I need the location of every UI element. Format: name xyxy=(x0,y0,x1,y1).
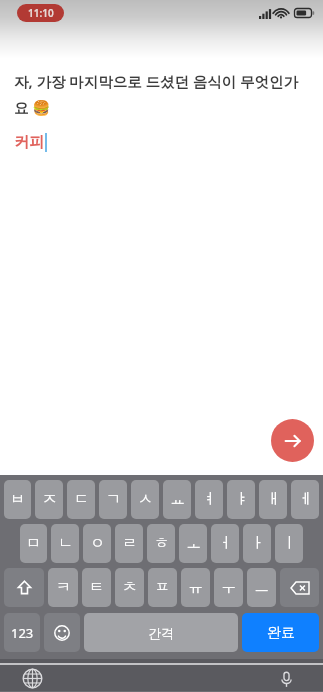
staticText: ㄴ xyxy=(58,534,73,553)
staticText: ㅇ xyxy=(90,534,105,553)
staticText: ㅌ xyxy=(89,578,104,597)
staticText: ㅡ xyxy=(254,578,269,597)
button[interactable]: ㅜ xyxy=(214,568,243,607)
button[interactable]: ㅊ xyxy=(115,568,144,607)
button[interactable]: ㅌ xyxy=(82,568,111,607)
staticText: ㅎ xyxy=(154,534,169,553)
button[interactable]: ㅋ xyxy=(48,568,78,607)
button[interactable]: ㅏ xyxy=(243,524,271,563)
button[interactable]: ㅣ xyxy=(275,524,303,563)
button[interactable]: ㅓ xyxy=(211,524,239,563)
staticText: ㅐ xyxy=(266,490,281,509)
button[interactable]: ㅛ xyxy=(163,480,191,519)
button[interactable]: ㅔ xyxy=(291,480,319,519)
staticText: ㅔ xyxy=(298,490,313,509)
button[interactable]: ㄴ xyxy=(51,524,79,563)
button[interactable]: ㅡ xyxy=(247,568,276,607)
staticText: 123 xyxy=(11,624,34,642)
button[interactable]: ㅇ xyxy=(83,524,111,563)
button[interactable]: ㄹ xyxy=(115,524,143,563)
staticText: ㅑ xyxy=(234,490,249,509)
staticText: 자, 가장 마지막으로 드셨던 음식이 무엇인가요 🍔 xyxy=(14,71,311,117)
staticText: ㄱ xyxy=(106,490,121,509)
staticText: ㅂ xyxy=(10,490,25,509)
button[interactable]: ㅑ xyxy=(227,480,255,519)
staticText: ㅜ xyxy=(221,578,236,597)
button[interactable]: ㅠ xyxy=(181,568,210,607)
button[interactable]: Shift xyxy=(4,568,44,607)
button[interactable]: ㅗ xyxy=(179,524,207,563)
staticText: ㅏ xyxy=(250,534,265,553)
staticText: 11:10 xyxy=(28,6,54,20)
staticText: ㅅ xyxy=(138,490,153,509)
button[interactable]: ㅐ xyxy=(259,480,287,519)
button[interactable]: ㄷ xyxy=(67,480,95,519)
button[interactable]: ㅂ xyxy=(4,480,31,519)
staticText: ㅁ xyxy=(26,534,41,553)
staticText: ㅠ xyxy=(188,578,203,597)
button[interactable]: ㅍ xyxy=(148,568,177,607)
staticText: ㅗ xyxy=(186,534,201,553)
button[interactable]: ㅕ xyxy=(195,480,223,519)
button[interactable]: 완료 xyxy=(242,613,319,652)
staticText: ㅣ xyxy=(282,534,297,553)
staticText: 커피 xyxy=(14,133,44,152)
button[interactable]: Voice input xyxy=(276,668,297,689)
button[interactable]: Backspace xyxy=(280,568,319,607)
button[interactable]: ㄱ xyxy=(99,480,127,519)
button[interactable]: ㅅ xyxy=(131,480,159,519)
button[interactable]: Emoji xyxy=(44,613,80,652)
staticText: ㅈ xyxy=(42,490,57,509)
button[interactable]: 간격 xyxy=(84,613,238,652)
staticText: ㅛ xyxy=(170,490,185,509)
staticText: ㅍ xyxy=(155,578,170,597)
staticText: 간격 xyxy=(148,625,174,641)
button[interactable]: Next question xyxy=(271,419,314,462)
staticText: ㅋ xyxy=(56,578,71,597)
staticText: ㅊ xyxy=(122,578,137,597)
button[interactable]: ㅈ xyxy=(35,480,63,519)
staticText: ㄷ xyxy=(74,490,89,509)
button[interactable]: Change keyboard language xyxy=(22,668,43,689)
staticText: ㄹ xyxy=(122,534,137,553)
button[interactable]: 123 xyxy=(4,613,40,652)
staticText: ㅕ xyxy=(202,490,217,509)
staticText: 완료 xyxy=(267,624,295,642)
button[interactable]: ㅁ xyxy=(20,524,47,563)
staticText: ㅓ xyxy=(218,534,233,553)
button[interactable]: ㅎ xyxy=(147,524,175,563)
